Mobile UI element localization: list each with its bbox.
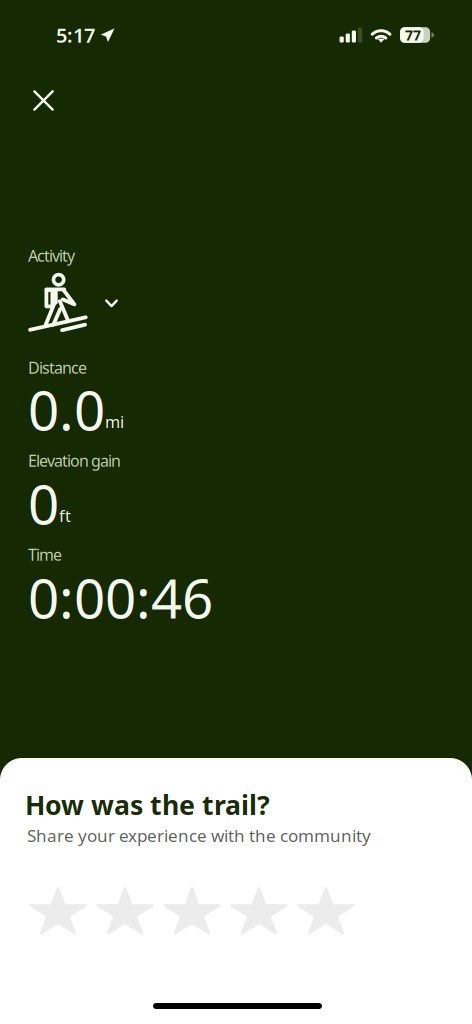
staticText: 0:00:46 [28, 561, 213, 634]
button[interactable]: Rate 3 stars [164, 887, 220, 934]
staticText: 5:17 [56, 22, 95, 48]
staticText: Share your experience with the community [27, 824, 371, 847]
button[interactable]: Change activity type [26, 268, 126, 334]
staticText: How was the trail? [25, 787, 270, 822]
staticText: Time [28, 544, 62, 565]
button[interactable]: Rate 2 stars [97, 887, 153, 934]
staticText: ft [59, 505, 71, 527]
staticText: 0 [28, 467, 59, 540]
staticText: 0.0 [28, 373, 105, 446]
staticText: 77 [405, 26, 421, 44]
button[interactable]: Rate 1 star [30, 887, 86, 934]
button[interactable]: Close [21, 78, 66, 123]
staticText: Distance [28, 357, 87, 378]
button[interactable]: Rate 5 stars [298, 887, 354, 934]
staticText: Elevation gain [28, 450, 121, 471]
button[interactable]: Rate 4 stars [231, 887, 287, 934]
staticText: Activity [28, 245, 75, 266]
staticText: mi [105, 411, 124, 433]
